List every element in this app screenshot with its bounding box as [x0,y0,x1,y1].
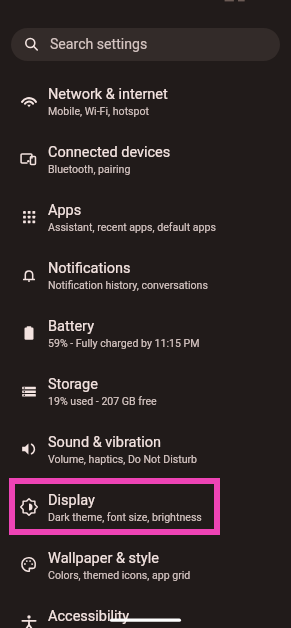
staticText: Notification history, conversations [48,279,208,291]
staticText: Connected devices [48,144,171,161]
staticText: Assistant, recent apps, default apps [48,221,216,233]
button[interactable]: Network & internet [0,72,291,130]
button[interactable]: Connected devices [0,130,291,188]
staticText: Notifications [48,260,131,277]
staticText: Sound & vibration [48,434,162,451]
staticText: Network & internet [48,86,168,103]
button[interactable]: Storage [0,362,291,420]
staticText: Colors, themed icons, app grid [48,569,191,581]
button[interactable]: Search settings [11,28,280,61]
button[interactable]: Apps [0,188,291,246]
staticText: Bluetooth, pairing [48,163,131,175]
staticText: Wallpaper & style [48,550,159,567]
button[interactable]: Battery [0,304,291,362]
staticText: Search settings [50,36,148,53]
staticText: Dark theme, font size, brightness [48,511,202,523]
staticText: 19% used - 207 GB free [48,395,157,407]
staticText: Volume, haptics, Do Not Disturb [48,453,198,465]
staticText: Mobile, Wi-Fi, hotspot [48,105,150,117]
button[interactable]: Wallpaper & style [0,536,291,594]
button[interactable]: Display [0,478,291,536]
staticText: Accessibility [48,608,130,625]
staticText: Apps [48,202,82,219]
staticText: Battery [48,318,94,335]
staticText: Display [48,492,95,509]
button[interactable]: Accessibility [0,594,291,628]
button[interactable]: Sound & vibration [0,420,291,478]
staticText: Storage [48,376,98,393]
button[interactable]: Notifications [0,246,291,304]
staticText: 59% - Fully charged by 11:15 PM [48,337,200,349]
